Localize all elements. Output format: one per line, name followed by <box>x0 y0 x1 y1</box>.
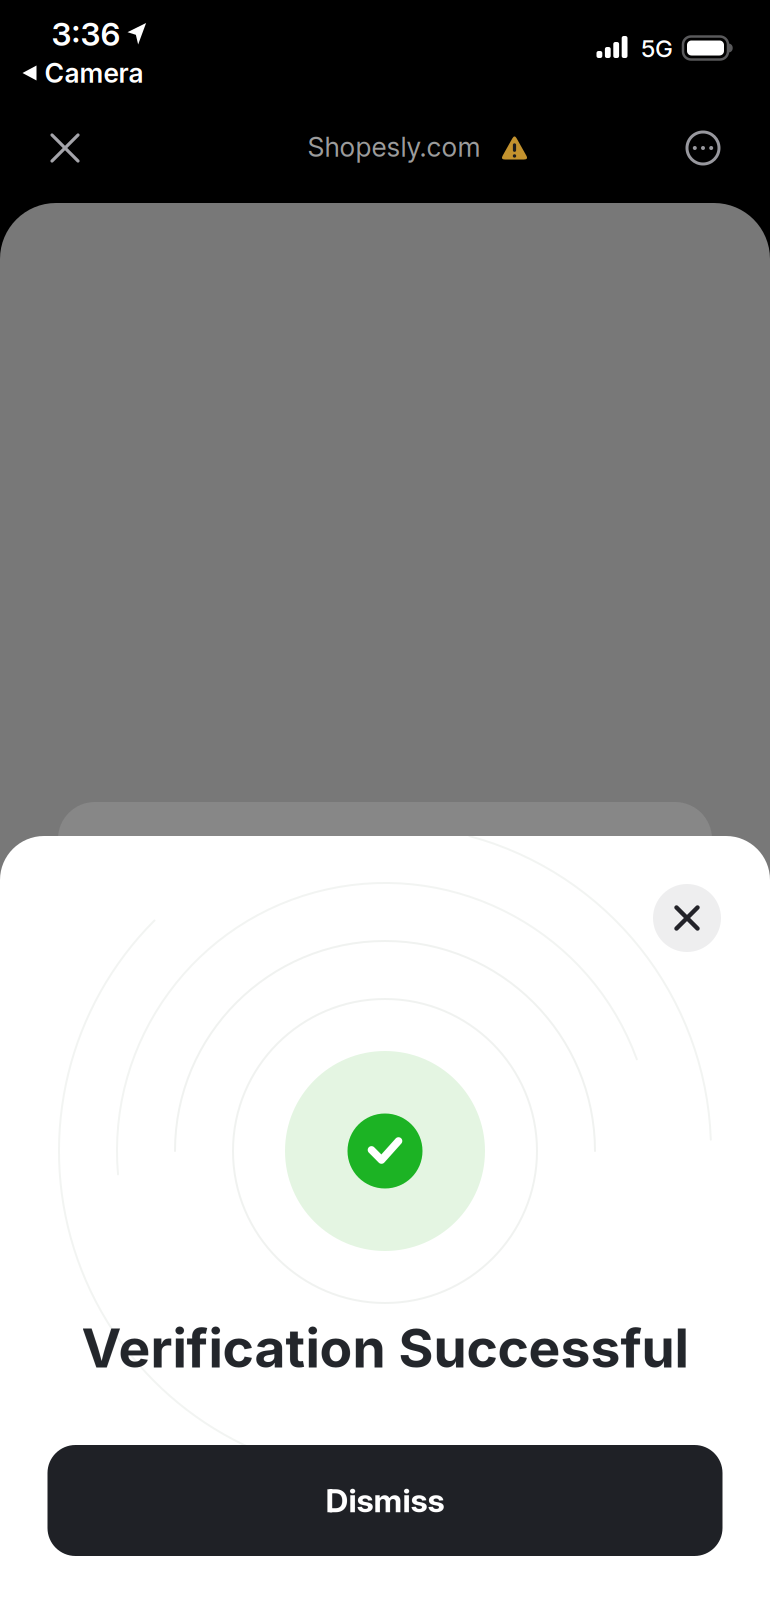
staticText: 3:36 <box>51 15 120 53</box>
staticText: Verification Successful <box>81 1316 688 1379</box>
button[interactable]: Dismiss <box>47 1445 722 1556</box>
staticText: Dismiss <box>325 1482 444 1519</box>
staticText: Shopesly.com <box>307 131 480 163</box>
staticText: 5G <box>641 34 673 63</box>
button[interactable]: Close <box>653 884 721 952</box>
button[interactable]: Close page <box>40 123 90 173</box>
staticText: Camera <box>44 57 143 89</box>
button[interactable]: Shopesly.com <box>307 131 528 163</box>
button[interactable]: More options <box>681 126 725 170</box>
button[interactable]: Camera <box>22 57 143 89</box>
